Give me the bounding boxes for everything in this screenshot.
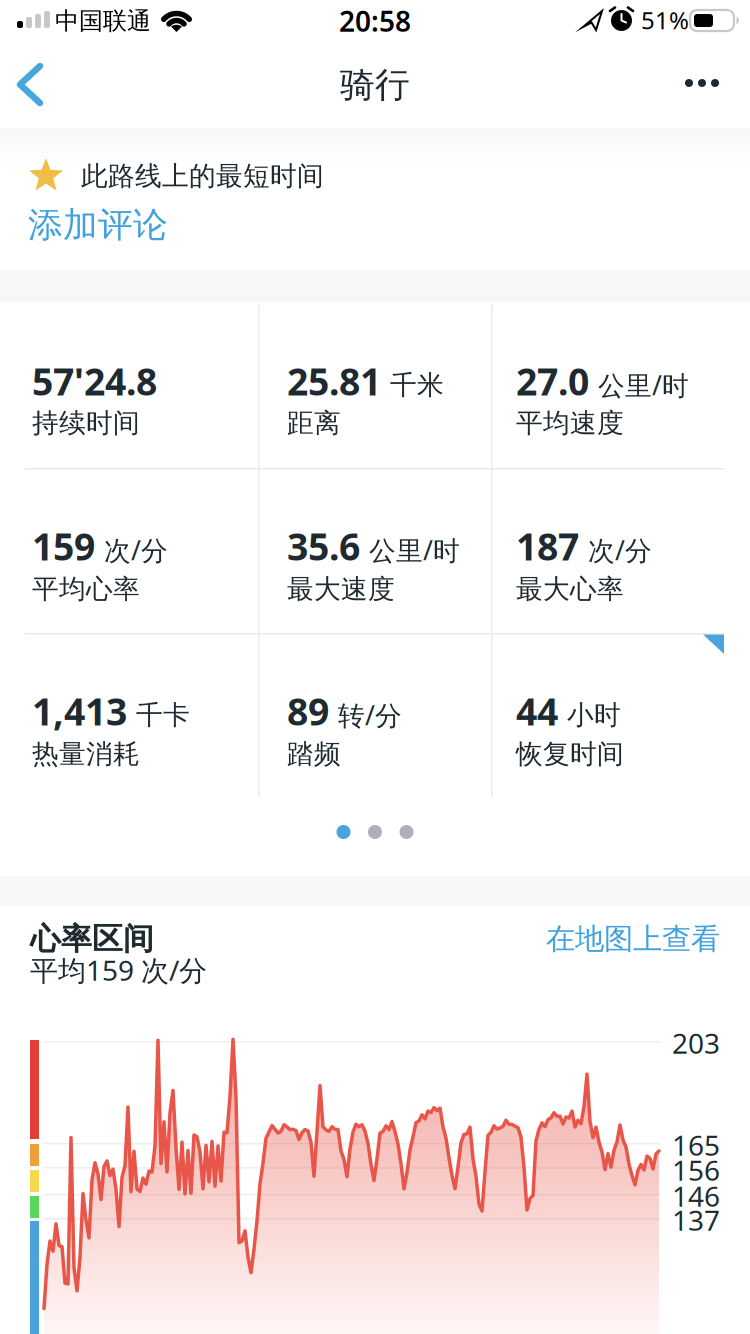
button[interactable]: More	[670, 53, 740, 113]
staticText: 千卡	[136, 699, 190, 731]
staticText: 次/分	[104, 532, 168, 568]
staticText: 平均心率	[32, 573, 140, 605]
staticText: 恢复时间	[516, 738, 624, 770]
staticText: 51%	[641, 4, 689, 36]
staticText: 35.6	[287, 521, 360, 571]
staticText: 转/分	[338, 697, 402, 733]
staticText: 156	[672, 1151, 720, 1189]
staticText: 187	[516, 521, 579, 571]
staticText: 20:58	[339, 2, 411, 40]
staticText: 小时	[567, 699, 621, 731]
button[interactable]: 恢复时间	[492, 634, 725, 797]
staticText: 公里/时	[598, 367, 689, 403]
button[interactable]: 添加评论	[28, 201, 228, 249]
staticText: 89	[287, 686, 329, 736]
staticText: 最大心率	[516, 573, 624, 605]
staticText: 公里/时	[369, 532, 460, 568]
staticText: 159	[32, 521, 95, 571]
staticText: 千米	[390, 369, 444, 401]
staticText: 心率区间	[30, 920, 154, 958]
staticText: 中国联通	[55, 6, 151, 36]
staticText: 57'24.8	[32, 356, 157, 406]
staticText: 165	[672, 1126, 720, 1164]
staticText: 平均速度	[516, 407, 624, 439]
button[interactable]: 在地图上查看	[420, 915, 720, 963]
staticText: 1,413	[32, 686, 127, 736]
staticText: 距离	[287, 407, 341, 439]
staticText: 146	[672, 1177, 720, 1215]
staticText: 持续时间	[32, 407, 140, 439]
staticText: 骑行	[340, 64, 410, 106]
staticText: 27.0	[516, 356, 589, 406]
staticText: 203	[672, 1024, 720, 1062]
staticText: 44	[516, 686, 558, 736]
staticText: 此路线上的最短时间	[81, 160, 324, 192]
staticText: 平均159 次/分	[30, 951, 207, 989]
staticText: 25.81	[287, 356, 381, 406]
staticText: 踏频	[287, 738, 341, 770]
staticText: 137	[672, 1201, 720, 1239]
staticText: 添加评论	[28, 204, 168, 246]
staticText: 在地图上查看	[546, 921, 720, 957]
staticText: 次/分	[588, 532, 652, 568]
staticText: 最大速度	[287, 573, 395, 605]
button[interactable]: Back	[0, 40, 88, 128]
staticText: 热量消耗	[32, 738, 140, 770]
